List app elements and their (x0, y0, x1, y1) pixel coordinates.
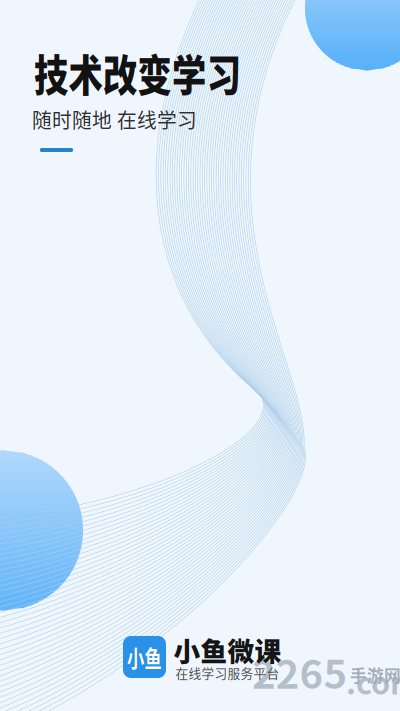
staticText: .com (346, 659, 400, 703)
staticText: 小鱼 (121, 641, 167, 673)
staticText: 在线学习服务平台 (175, 663, 279, 682)
staticText: 2265 (252, 644, 344, 700)
button[interactable]: 小鱼 (123, 636, 283, 679)
staticText: 技术改变学习 (34, 42, 292, 104)
staticText: 随时随地 在线学习 (32, 104, 205, 134)
staticText: 小鱼微课 (173, 630, 281, 669)
staticText: 手游网 (350, 663, 400, 687)
